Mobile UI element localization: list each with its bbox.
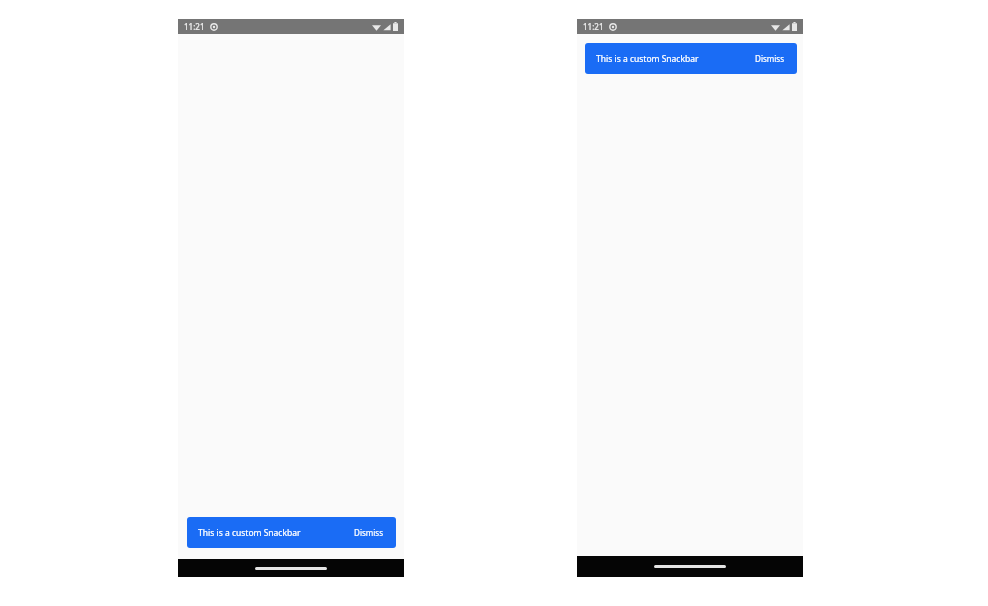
button[interactable]: Home gesture xyxy=(654,565,726,568)
staticText: Dismiss xyxy=(354,527,383,538)
staticText: This is a custom Snackbar xyxy=(596,53,753,65)
staticText: 11:21 xyxy=(184,21,205,32)
button[interactable]: Dismiss xyxy=(352,524,385,541)
button[interactable]: This is a custom Snackbar xyxy=(187,517,396,548)
button[interactable]: Dismiss xyxy=(753,50,786,67)
button[interactable]: This is a custom Snackbar xyxy=(585,43,797,74)
button[interactable]: Home gesture xyxy=(255,567,327,570)
staticText: 11:21 xyxy=(583,21,604,32)
staticText: Dismiss xyxy=(755,53,784,64)
staticText: This is a custom Snackbar xyxy=(198,527,352,539)
